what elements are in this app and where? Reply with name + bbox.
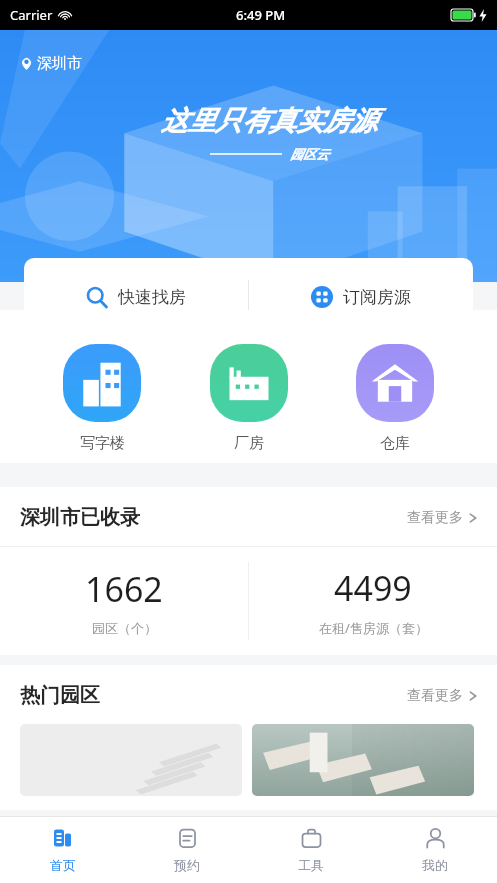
staticText: 深圳市已收录 [20,505,140,530]
staticText: 我的 [422,857,448,873]
staticText: 首页 [50,857,76,873]
button[interactable]: 工具 [249,817,373,883]
button[interactable]: 预约 [125,817,249,883]
staticText: 深圳市 [37,54,82,73]
staticText: 在租/售房源（套） [319,619,428,637]
button[interactable]: 写字楼 [57,340,147,457]
button[interactable]: 首页 [0,817,125,883]
staticText: 订阅房源 [343,287,411,308]
staticText: 园区（个） [92,620,157,636]
button[interactable]: 热门园区 [0,665,497,724]
button[interactable]: 1662 [0,566,248,636]
button[interactable]: 快速找房 [24,258,248,336]
staticText: 快速找房 [118,287,186,308]
staticText: 预约 [174,857,200,873]
button[interactable]: 订阅房源 [249,258,473,336]
button[interactable]: 厂房 [204,340,294,457]
staticText: Carrier [10,6,53,24]
staticText: 查看更多 [407,687,463,705]
staticText: 厂房 [234,434,264,453]
button[interactable]: 4499 [249,565,497,637]
button[interactable] [20,724,242,796]
staticText: 工具 [298,857,324,873]
staticText: 热门园区 [20,683,100,708]
button[interactable]: 深圳市已收录 [0,487,497,546]
staticText: 6:49 PM [236,6,286,24]
button[interactable] [252,724,474,796]
staticText: 1662 [85,566,163,612]
staticText: 查看更多 [407,509,463,527]
button[interactable]: 我的 [373,817,497,883]
staticText: 园区云 [290,146,329,162]
button[interactable]: 仓库 [350,340,440,457]
staticText: 写字楼 [80,434,125,453]
staticText: 这里只有真实房源 [161,104,377,138]
staticText: 仓库 [380,434,410,453]
staticText: 4499 [334,565,412,611]
